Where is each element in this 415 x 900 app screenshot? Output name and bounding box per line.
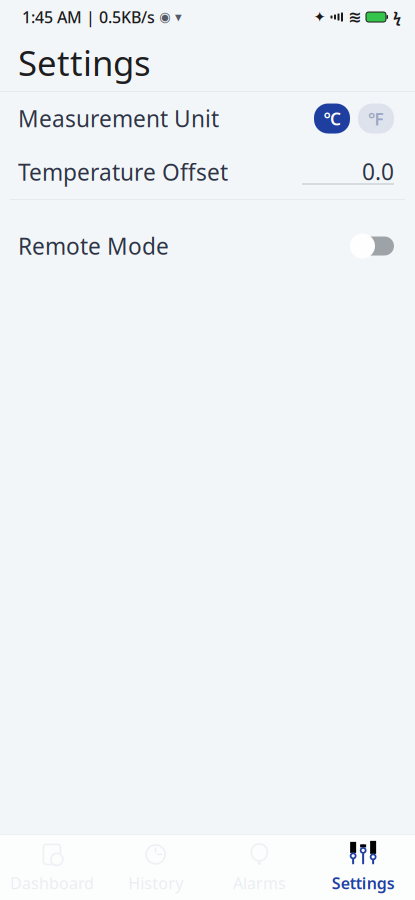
- staticText: ◉ ▾: [155, 9, 182, 24]
- staticText: ℉: [368, 107, 384, 130]
- button[interactable]: ℃: [314, 103, 350, 133]
- staticText: Alarms: [233, 872, 286, 894]
- button[interactable]: Settings: [311, 835, 415, 900]
- staticText: Temperature Offset: [18, 157, 228, 187]
- staticText: ≋: [348, 8, 361, 26]
- staticText: Remote Mode: [18, 231, 169, 261]
- staticText: 1:45 AM | 0.5KB/s: [22, 6, 155, 28]
- button[interactable]: History: [104, 835, 208, 900]
- staticText: ℃: [323, 107, 340, 130]
- staticText: ϟ: [393, 7, 401, 27]
- staticText: Dashboard: [10, 872, 94, 894]
- button[interactable]: Dashboard: [0, 835, 104, 900]
- staticText: Settings: [18, 39, 151, 85]
- staticText: ✦: [313, 9, 325, 25]
- button[interactable]: ℉: [358, 103, 394, 133]
- staticText: Measurement Unit: [18, 103, 219, 133]
- staticText: Settings: [332, 872, 395, 894]
- staticText: History: [128, 872, 183, 894]
- button[interactable]: Remote Mode: [350, 229, 394, 263]
- staticText: 0.0: [362, 156, 394, 186]
